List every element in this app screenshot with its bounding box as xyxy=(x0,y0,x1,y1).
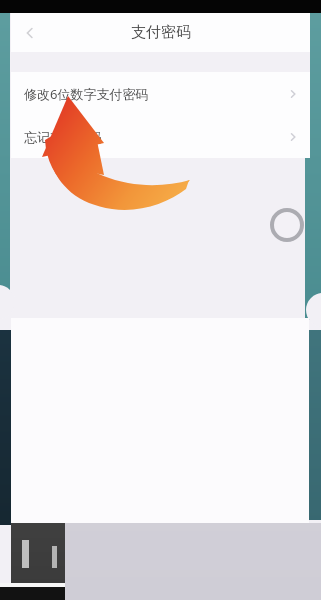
button[interactable]: 修改6位数字支付密码 xyxy=(11,72,310,115)
staticText: 修改6位数字支付密码 xyxy=(24,85,149,103)
staticText: 忘记支付密码 xyxy=(24,129,102,145)
button[interactable]: 忘记支付密码 xyxy=(11,115,310,158)
button[interactable]: Back xyxy=(11,14,49,52)
staticText: 支付密码 xyxy=(131,23,191,42)
